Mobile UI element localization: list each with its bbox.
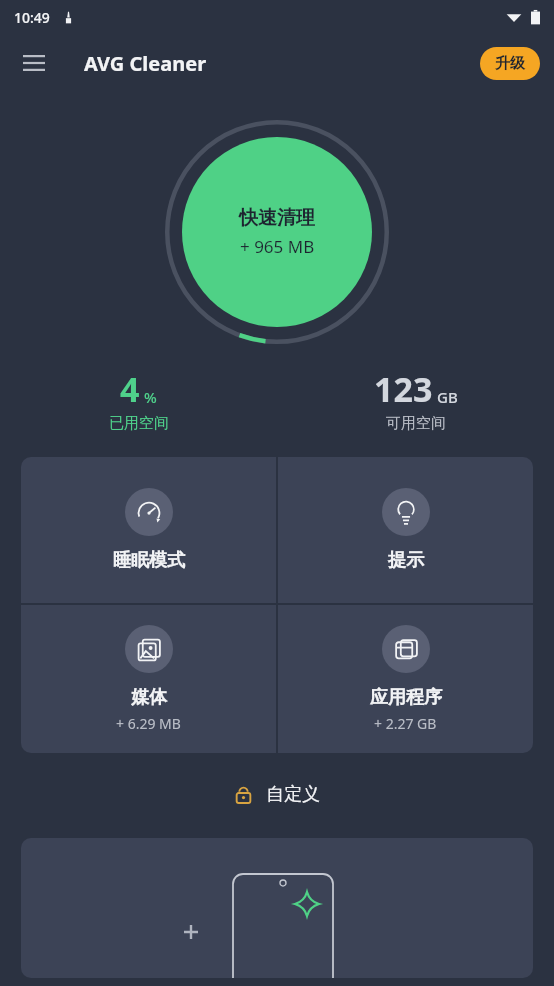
button[interactable]: Media — [21, 605, 276, 753]
button[interactable]: 123 — [277, 366, 554, 433]
staticText: 媒体 — [131, 686, 167, 709]
button[interactable]: 自定义 — [220, 775, 334, 814]
staticText: GB — [437, 387, 458, 407]
button[interactable]: Menu — [10, 39, 58, 87]
staticText: 应用程序 — [370, 686, 442, 709]
other: Apps — [382, 625, 430, 673]
staticText: 提示 — [388, 549, 424, 572]
staticText: 自定义 — [266, 783, 320, 806]
other: Sleep mode — [125, 488, 173, 536]
button[interactable]: 升级 — [480, 47, 540, 80]
staticText: + 965 MB — [240, 235, 315, 258]
staticText: 123 — [374, 366, 433, 412]
button[interactable]: Apps — [278, 605, 533, 753]
button[interactable]: 快速清理 — [164, 119, 390, 345]
staticText: % — [144, 387, 157, 407]
staticText: + 2.27 GB — [374, 714, 437, 733]
staticText: 升级 — [495, 54, 525, 73]
staticText: + 6.29 MB — [116, 714, 181, 733]
other: Media — [125, 625, 173, 673]
button[interactable]: 4 — [0, 366, 277, 433]
staticText: 可用空间 — [386, 414, 446, 433]
staticText: 睡眠模式 — [113, 549, 185, 572]
button[interactable]: Sleep mode — [21, 457, 276, 603]
staticText: 快速清理 — [239, 206, 315, 230]
button[interactable] — [21, 838, 533, 978]
staticText: 已用空间 — [109, 414, 169, 433]
other: Tips — [382, 488, 430, 536]
staticText: 10:49 — [14, 8, 50, 27]
staticText: 4 — [120, 366, 140, 412]
button[interactable]: Tips — [278, 457, 533, 603]
staticText: AVG Cleaner — [84, 50, 207, 77]
